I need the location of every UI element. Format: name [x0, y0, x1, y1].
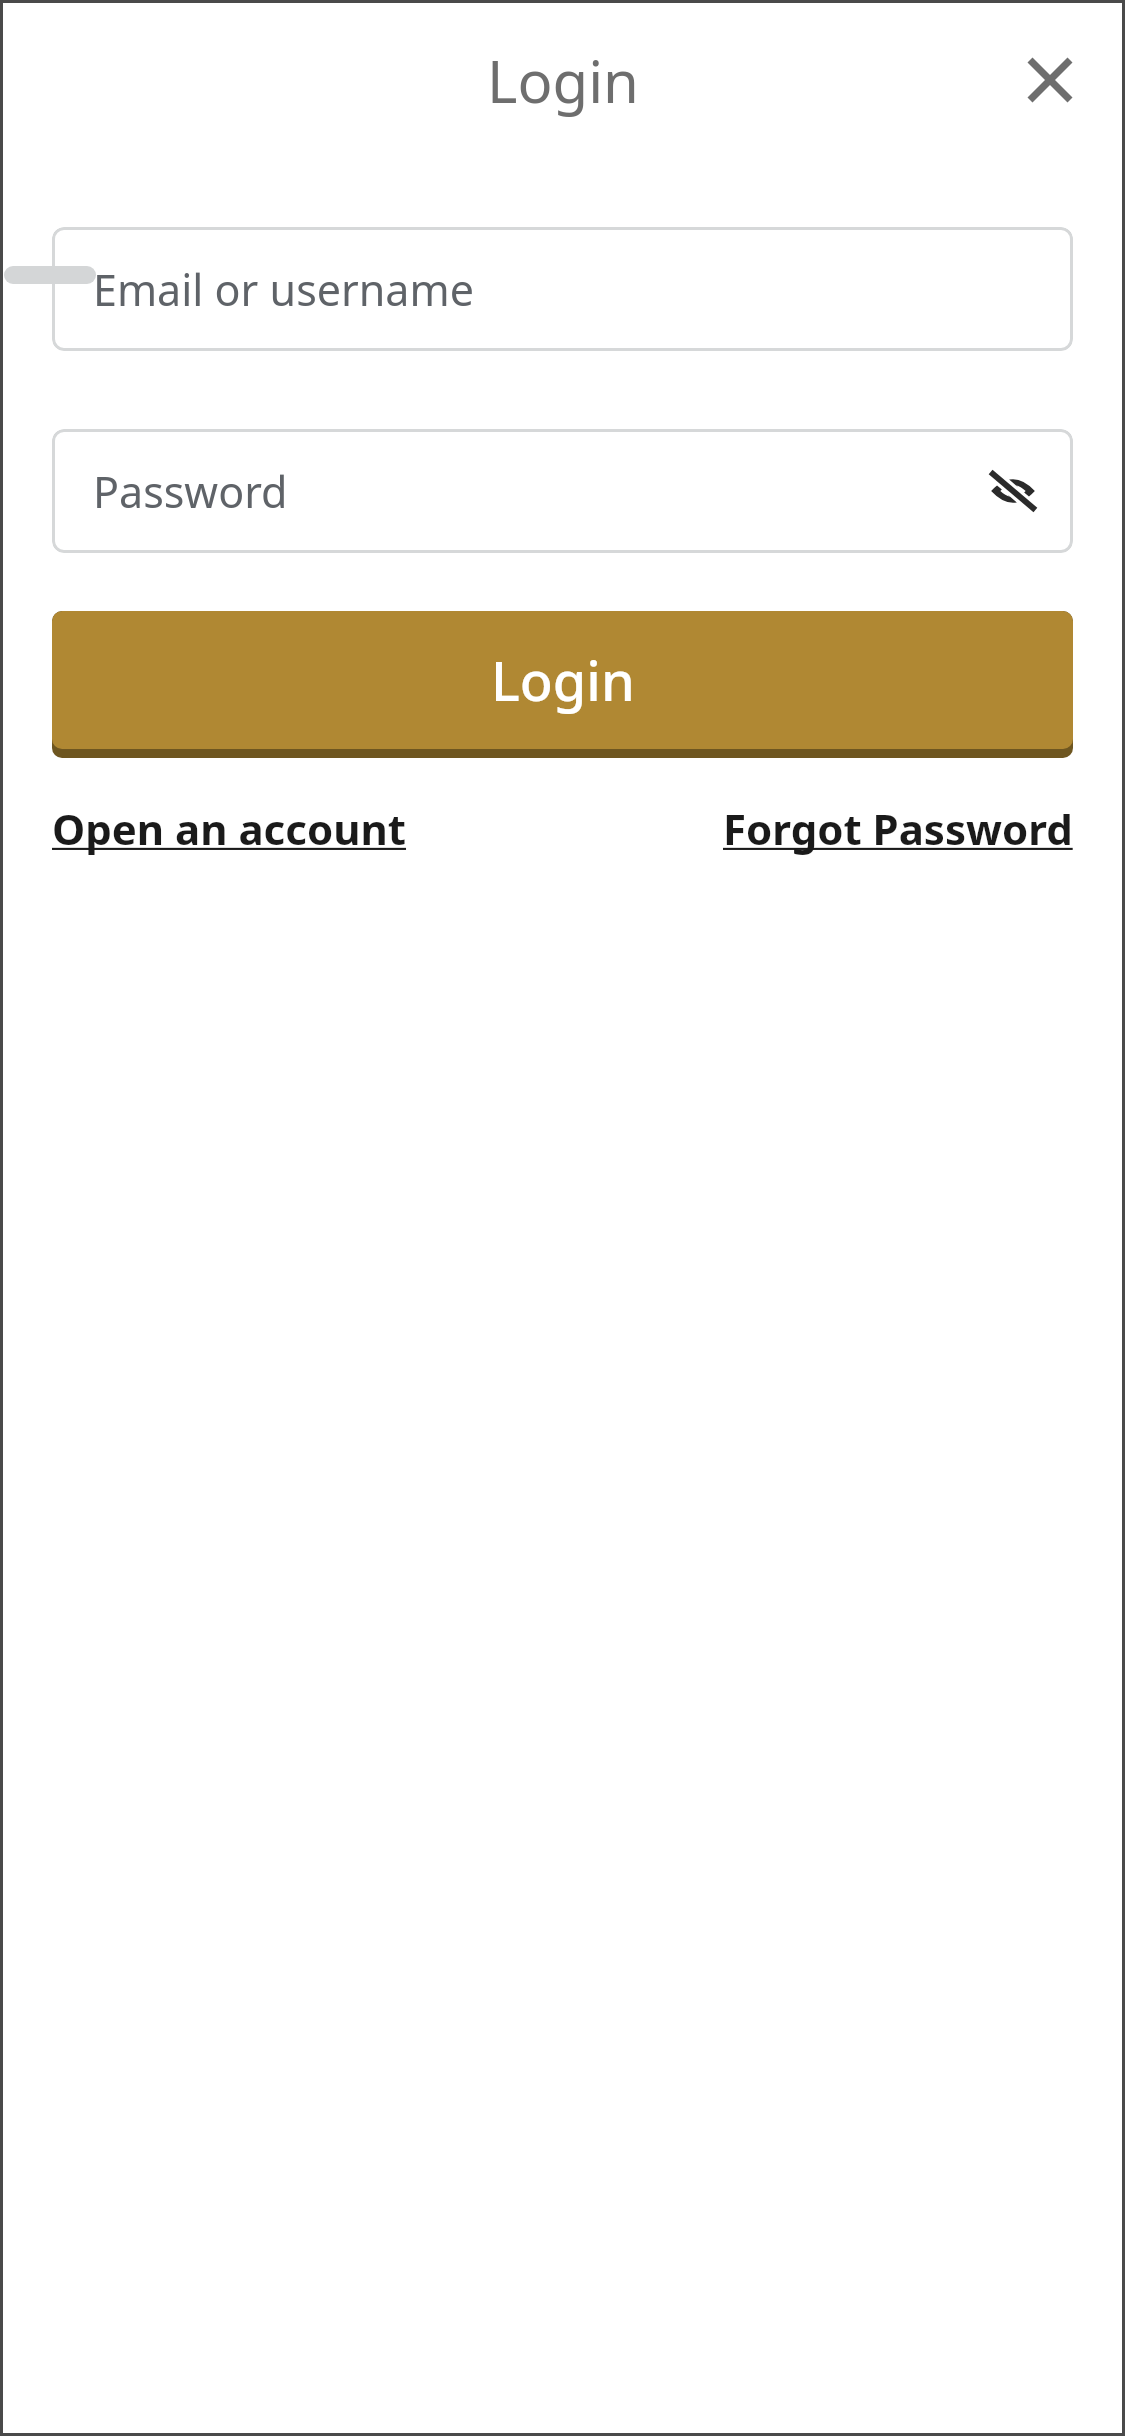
button[interactable]: Login	[52, 611, 1073, 758]
button[interactable]: Open an account	[52, 800, 407, 857]
button[interactable]: Forgot Password	[723, 800, 1073, 857]
staticText: Login	[491, 643, 635, 717]
staticText: Email or username	[93, 260, 474, 319]
staticText: Password	[93, 462, 288, 521]
button[interactable]: Email or username	[52, 227, 1073, 351]
button[interactable]: Show password	[967, 445, 1059, 537]
button[interactable]: Close	[1005, 35, 1095, 125]
staticText: Login	[487, 41, 639, 120]
staticText: Forgot Password	[723, 800, 1073, 857]
staticText: Open an account	[52, 800, 407, 857]
button[interactable]: Password	[52, 429, 1073, 553]
